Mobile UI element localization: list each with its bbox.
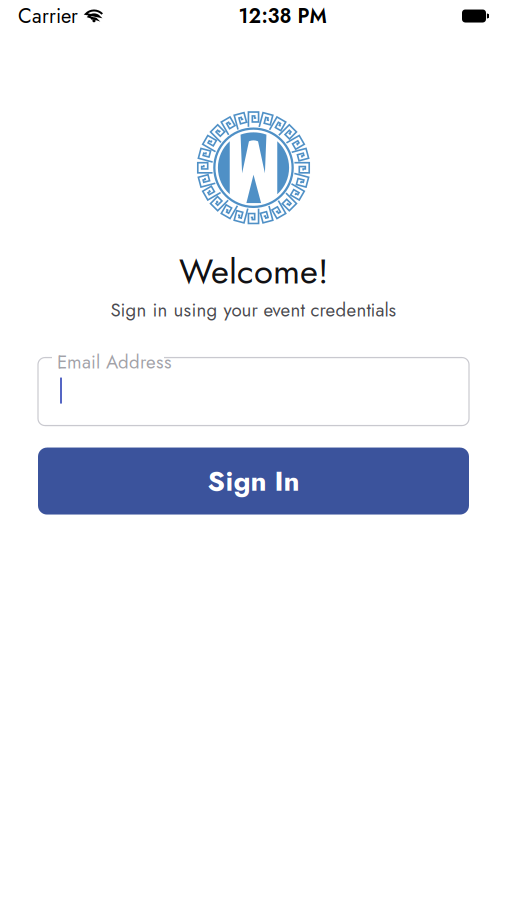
button[interactable]: Sign In <box>38 448 469 515</box>
staticText: Sign In <box>207 461 299 501</box>
staticText: Sign in using your event credentials <box>110 297 396 324</box>
staticText: Welcome! <box>179 246 328 297</box>
staticText: Email Address <box>57 349 172 376</box>
staticText: 12:38 PM <box>238 1 326 30</box>
staticText: Carrier <box>18 1 78 30</box>
